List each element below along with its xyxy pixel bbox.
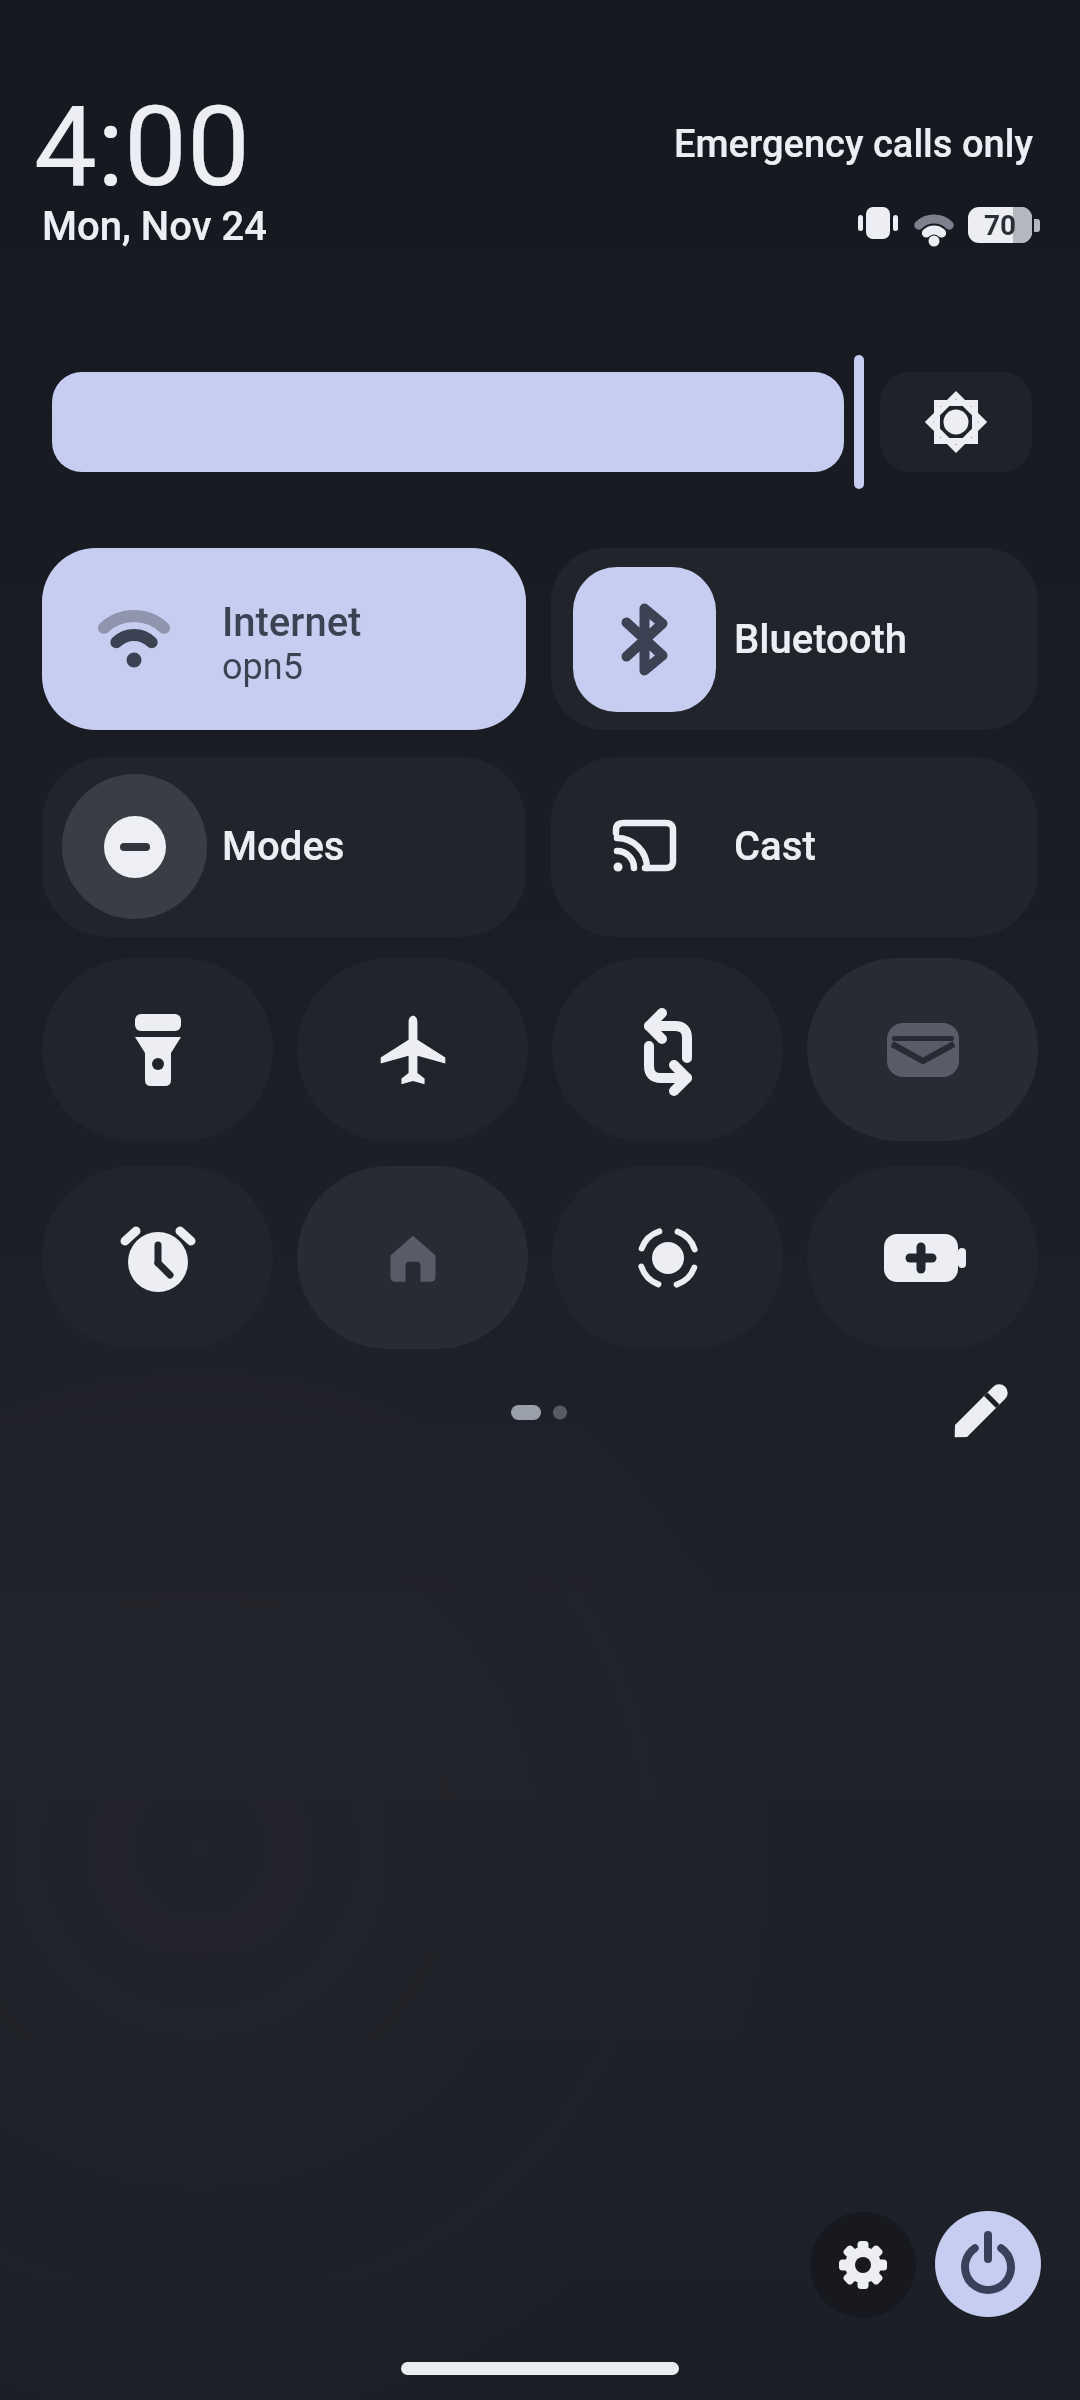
button[interactable] bbox=[807, 958, 1038, 1141]
button[interactable] bbox=[810, 2212, 916, 2318]
button[interactable] bbox=[297, 958, 528, 1141]
staticText: 70 bbox=[984, 209, 1017, 242]
staticText: Bluetooth bbox=[734, 616, 907, 663]
button[interactable] bbox=[52, 372, 844, 472]
button[interactable] bbox=[42, 958, 273, 1141]
button[interactable]: Cast bbox=[551, 757, 1038, 937]
staticText: Cast bbox=[734, 823, 816, 870]
button[interactable] bbox=[880, 372, 1032, 472]
button[interactable]: Bluetooth bbox=[551, 548, 1038, 730]
staticText: Modes bbox=[222, 823, 345, 870]
button[interactable] bbox=[297, 1166, 528, 1349]
button[interactable] bbox=[928, 1364, 1028, 1464]
button[interactable] bbox=[807, 1166, 1038, 1349]
button[interactable] bbox=[42, 1166, 273, 1349]
staticText: Internet bbox=[222, 599, 362, 646]
button[interactable] bbox=[552, 958, 783, 1141]
button[interactable]: Internet bbox=[42, 548, 526, 730]
staticText: Mon, Nov 24 bbox=[42, 203, 267, 250]
button[interactable] bbox=[935, 2211, 1041, 2317]
button[interactable] bbox=[552, 1166, 783, 1349]
staticText: Emergency calls only bbox=[674, 122, 1033, 167]
button[interactable]: Modes bbox=[42, 757, 526, 937]
staticText: 4:00 bbox=[34, 81, 250, 212]
staticText: opn5 bbox=[222, 646, 303, 688]
